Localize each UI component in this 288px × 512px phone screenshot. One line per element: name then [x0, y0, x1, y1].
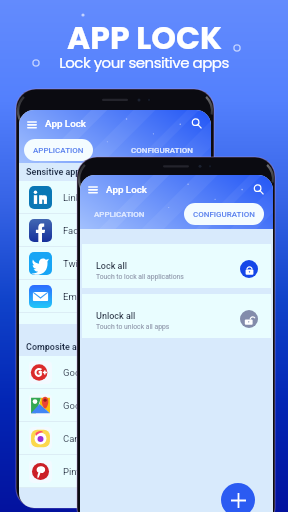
staticText: Touch to unlock all apps: [96, 323, 170, 331]
staticText: APPLICATION: [94, 210, 145, 219]
staticText: APPLICATION: [33, 146, 84, 155]
button[interactable]: CONFIGURATION: [184, 203, 264, 225]
staticText: Unlock all: [96, 311, 136, 322]
button[interactable]: APPLICATION: [24, 139, 93, 161]
other: Search: [253, 184, 264, 195]
button[interactable]: Twitter: [19, 247, 211, 280]
staticText: APP LOCK: [67, 16, 222, 60]
staticText: LinkedIn: [63, 192, 99, 203]
staticText: CONFIGURATION: [193, 210, 255, 219]
button[interactable]: Pinterest: [19, 455, 211, 488]
button[interactable]: CONFIGURATION: [122, 139, 202, 161]
button[interactable]: APPLICATION: [85, 203, 154, 225]
staticText: Google Maps: [63, 400, 120, 411]
button[interactable]: Camera: [19, 422, 211, 455]
button[interactable]: Email: [19, 280, 211, 313]
button[interactable]: Google Maps: [19, 389, 211, 422]
staticText: App Lock: [45, 118, 86, 129]
staticText: Touch to lock all applications: [96, 273, 184, 281]
button[interactable]: Facebook: [19, 214, 211, 247]
staticText: Pinterest: [63, 466, 101, 477]
button[interactable]: Google+: [19, 356, 211, 389]
staticText: Sensitive applications: [26, 167, 115, 178]
button[interactable]: Add application: [221, 483, 255, 512]
button[interactable]: Lock all: [82, 244, 271, 288]
staticText: Twitter: [63, 258, 93, 269]
button[interactable]: Unlock all: [82, 294, 271, 338]
staticText: Google+: [63, 367, 99, 378]
staticText: Camera: [63, 433, 96, 444]
other: Search: [191, 118, 202, 129]
staticText: Composite applications: [26, 342, 122, 353]
staticText: App Lock: [106, 184, 147, 195]
button[interactable]: LinkedIn: [19, 181, 211, 214]
staticText: Facebook: [63, 225, 105, 236]
staticText: Lock your sensitive apps: [59, 52, 229, 73]
other: Menu: [88, 184, 98, 194]
staticText: Lock all: [96, 261, 128, 272]
staticText: Email: [63, 291, 87, 302]
other: Menu: [27, 119, 37, 129]
staticText: CONFIGURATION: [131, 146, 193, 155]
